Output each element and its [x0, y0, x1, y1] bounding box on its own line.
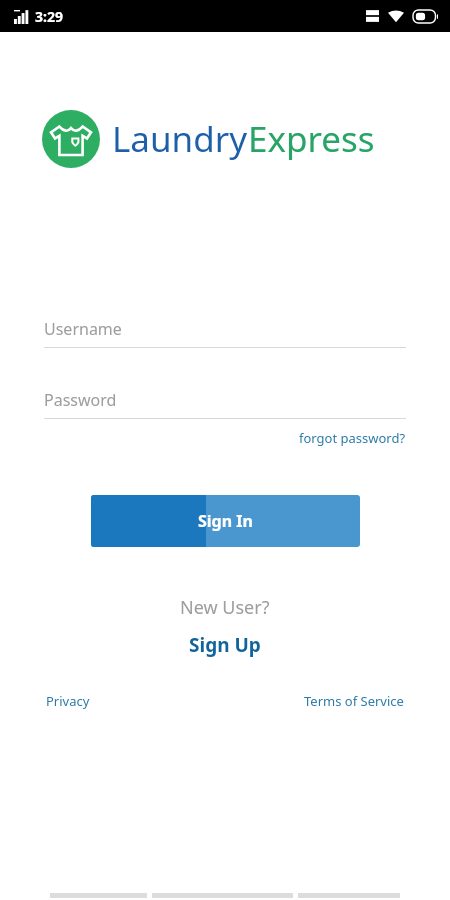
- staticText: Privacy: [46, 692, 90, 710]
- staticText: Terms of Service: [304, 692, 404, 710]
- staticText: Password: [44, 389, 117, 411]
- staticText: Express: [248, 115, 375, 163]
- staticText: New User?: [180, 595, 270, 620]
- staticText: 3:29: [35, 7, 63, 26]
- button[interactable]: Username: [44, 318, 406, 348]
- button[interactable]: Sign In: [91, 495, 360, 547]
- staticText: Laundry: [112, 115, 248, 163]
- staticText: Sign Up: [189, 632, 261, 658]
- staticText: Sign In: [198, 510, 253, 532]
- button[interactable]: Sign Up: [179, 630, 271, 660]
- button[interactable]: Privacy: [44, 688, 92, 714]
- staticText: forgot password?: [299, 429, 406, 447]
- button[interactable]: Terms of Service: [302, 688, 406, 714]
- button[interactable]: Password: [44, 389, 406, 419]
- staticText: Username: [44, 318, 122, 340]
- button[interactable]: forgot password?: [291, 419, 406, 451]
